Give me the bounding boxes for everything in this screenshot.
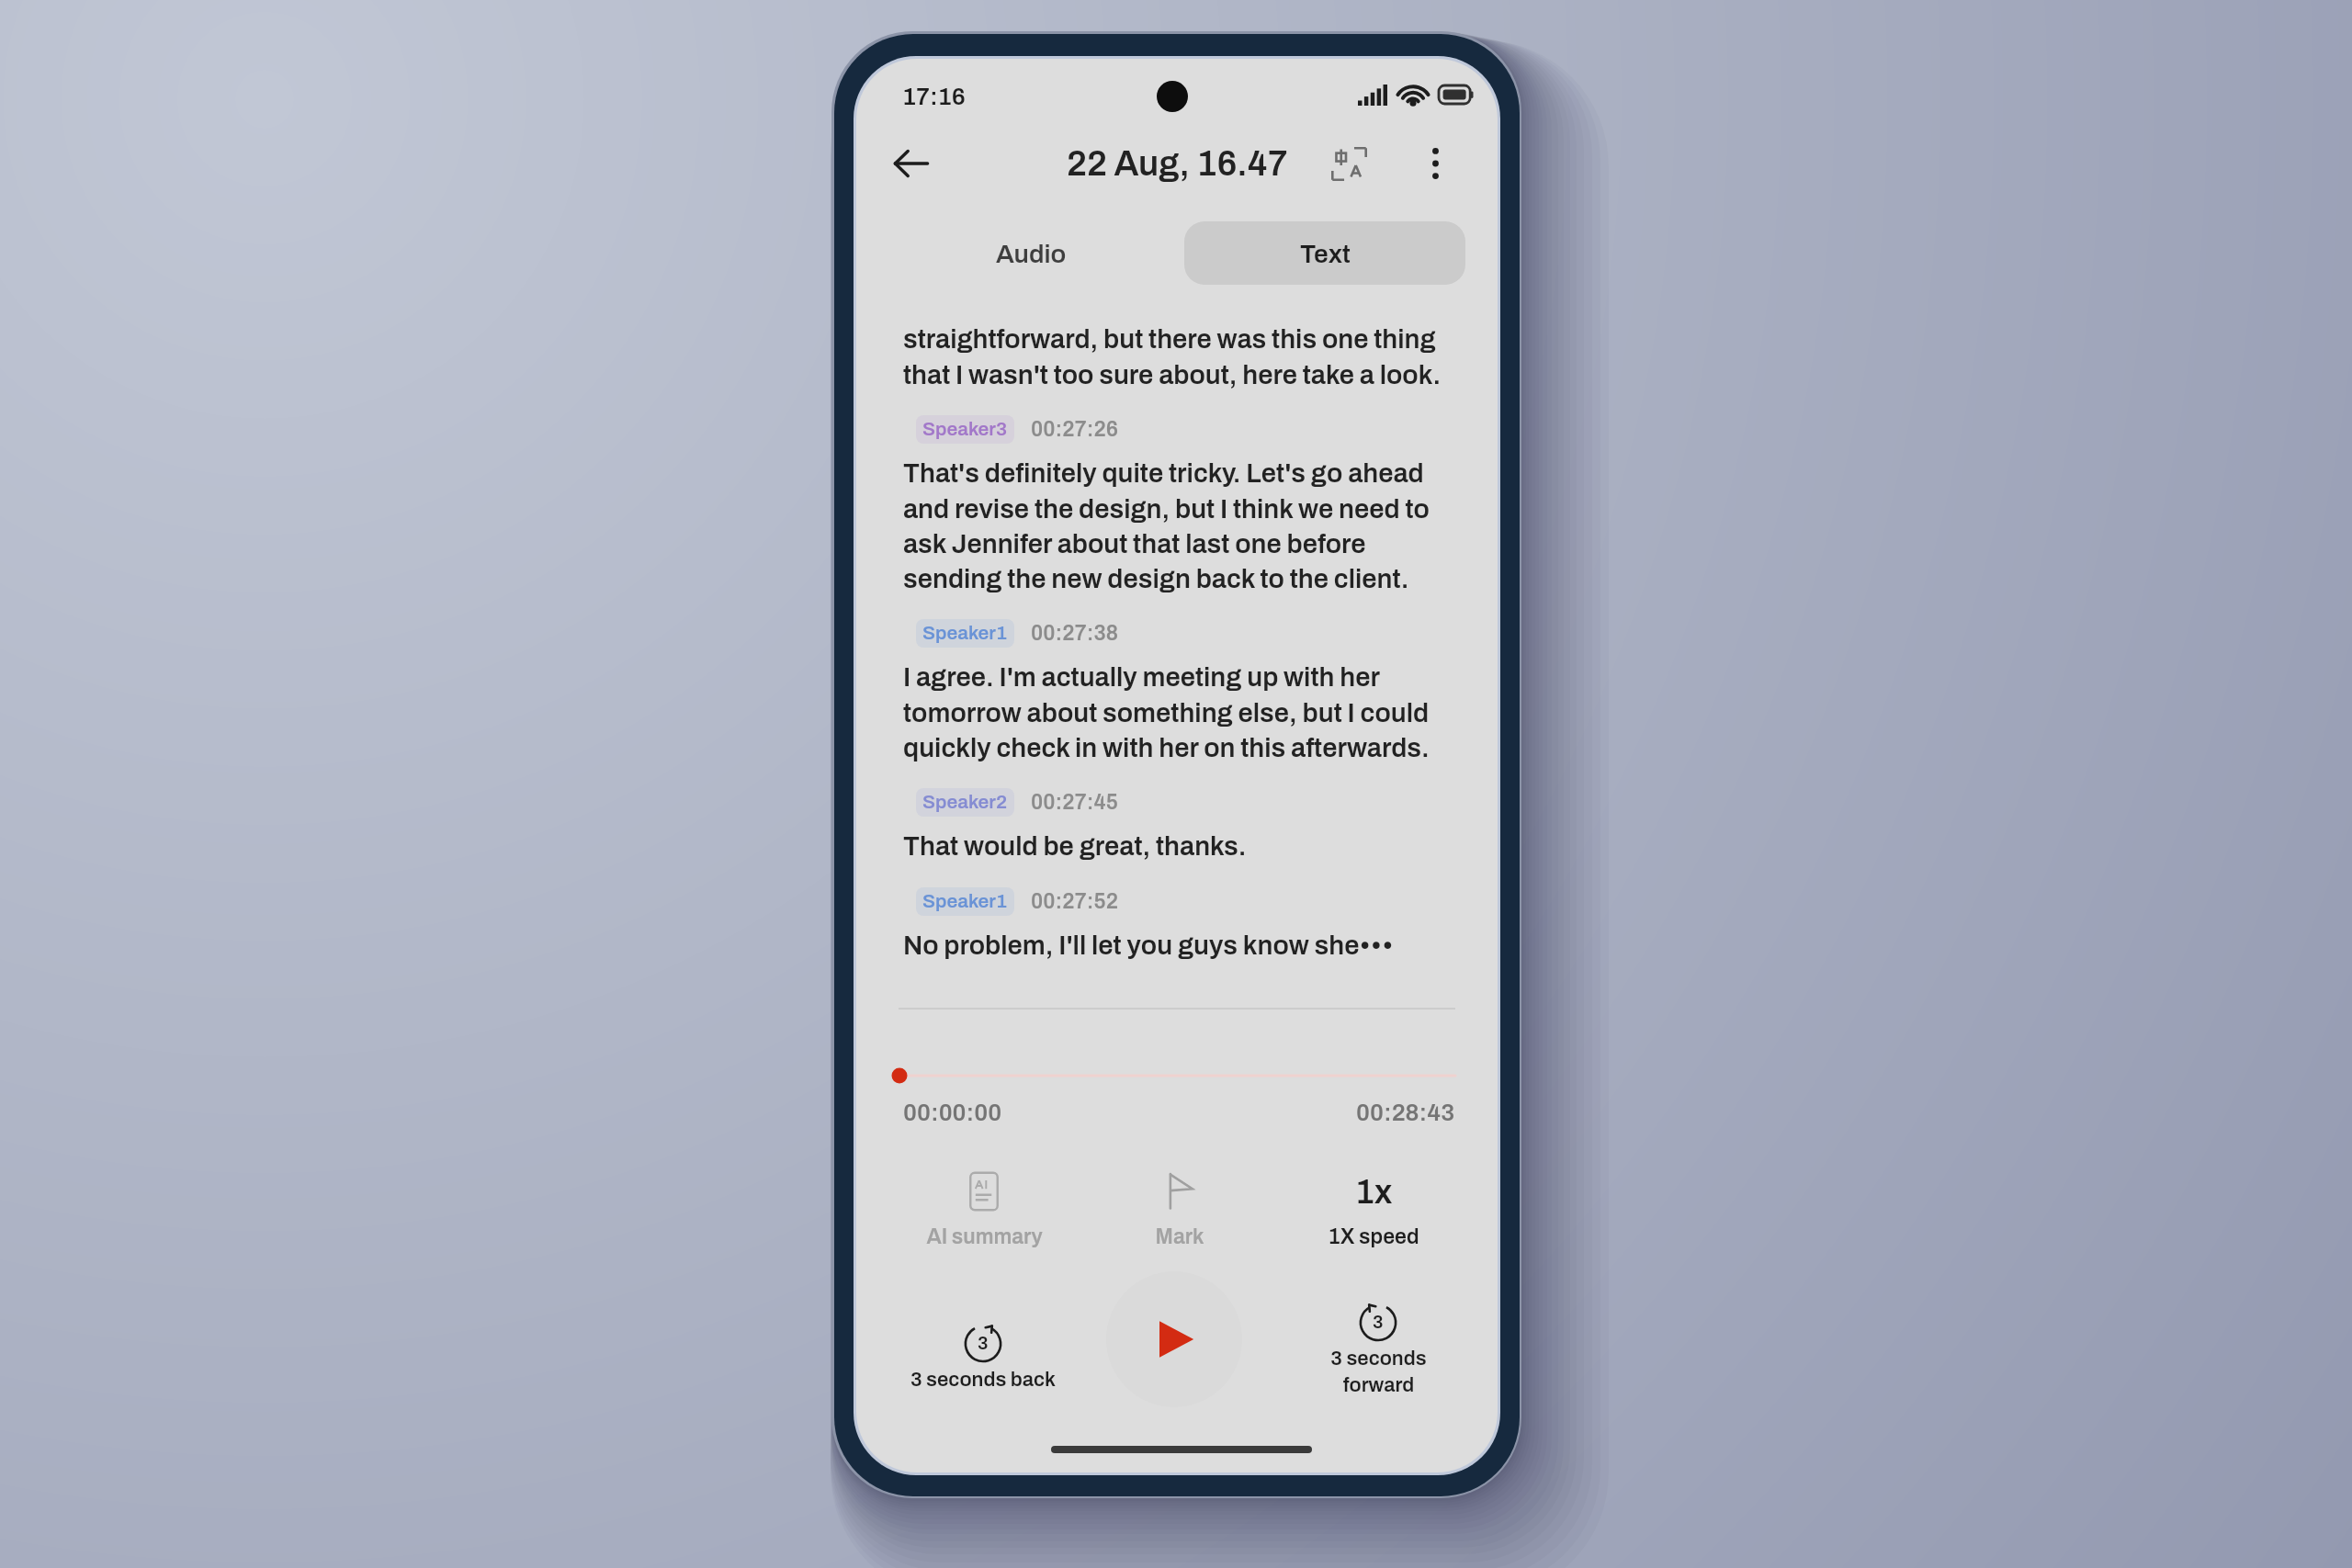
staticText: That would be great, thanks.	[903, 832, 1247, 862]
staticText: 00:28:43	[1356, 1100, 1455, 1125]
staticText: 00:27:52	[1031, 890, 1118, 913]
button[interactable]: 3	[882, 1322, 1084, 1391]
button[interactable]: Text	[1184, 221, 1465, 285]
button[interactable]: Play	[1106, 1271, 1242, 1407]
staticText: Speaker1	[922, 891, 1008, 912]
staticText: 3	[978, 1333, 989, 1353]
staticText: That's definitely quite tricky. Let's go…	[903, 459, 1430, 593]
staticText: Speaker3	[922, 419, 1008, 440]
staticText: Text	[1300, 240, 1351, 267]
staticText: 1X speed	[1328, 1225, 1419, 1248]
button[interactable]: More options	[1400, 129, 1470, 198]
staticText: I agree. I'm actually meeting up with he…	[903, 663, 1430, 762]
button[interactable]: Mark	[1097, 1170, 1262, 1248]
staticText: 00:27:45	[1031, 791, 1118, 814]
staticText: 00:00:00	[903, 1100, 1002, 1125]
button[interactable]: Back	[876, 129, 946, 198]
staticText: Speaker2	[922, 792, 1008, 813]
staticText: 3	[1373, 1312, 1384, 1332]
staticText: 00:27:38	[1031, 622, 1118, 645]
staticText: Mark	[1155, 1225, 1204, 1248]
staticText: straightforward, but there was this one …	[903, 325, 1442, 389]
staticText: 17:16	[902, 84, 966, 109]
staticText: 00:27:26	[1031, 418, 1118, 441]
button[interactable]: 3	[1277, 1301, 1479, 1396]
staticText: Audio	[996, 240, 1067, 267]
staticText: No problem, I'll let you guys know she••…	[903, 931, 1394, 961]
staticText: 3 seconds back	[910, 1369, 1056, 1391]
staticText: 22 Aug, 16.47	[1067, 145, 1288, 183]
button[interactable]: Translate	[1314, 129, 1384, 198]
staticText: 1x	[1355, 1174, 1393, 1210]
button[interactable]: AI summary	[901, 1170, 1067, 1248]
button[interactable]: Audio	[893, 221, 1169, 285]
button[interactable]: 1x	[1291, 1170, 1456, 1248]
staticText: Speaker1	[922, 623, 1008, 644]
button[interactable]: Playback position	[890, 1059, 1461, 1092]
staticText: 3 seconds forward	[1330, 1348, 1427, 1396]
staticText: AI summary	[926, 1225, 1043, 1248]
